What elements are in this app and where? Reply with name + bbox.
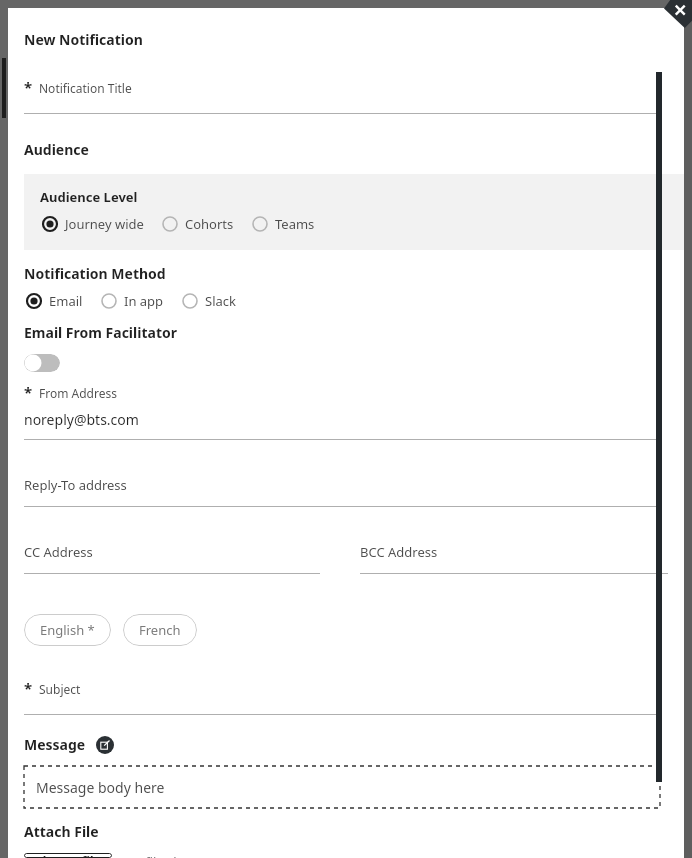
- staticText: *: [24, 382, 33, 402]
- staticText: Journey wide: [65, 215, 144, 233]
- staticText: From Address: [39, 385, 117, 401]
- button[interactable]: Edit message: [96, 736, 114, 754]
- button[interactable]: Teams: [250, 212, 317, 236]
- staticText: New Notification: [24, 30, 143, 49]
- staticText: *: [24, 678, 33, 698]
- button[interactable]: Email: [24, 289, 85, 313]
- staticText: Email From Facilitator: [24, 323, 177, 342]
- staticText: Attach File: [24, 822, 99, 841]
- staticText: Notification Title: [39, 80, 132, 96]
- staticText: Cohorts: [185, 215, 234, 233]
- staticText: Notification Method: [24, 264, 166, 283]
- staticText: Message body here: [36, 778, 165, 797]
- staticText: Teams: [275, 215, 315, 233]
- button[interactable]: Cohorts: [160, 212, 236, 236]
- button[interactable]: Choose file: [24, 853, 112, 858]
- staticText: In app: [124, 292, 164, 310]
- staticText: Slack: [205, 292, 236, 310]
- staticText: Reply-To address: [24, 476, 127, 494]
- staticText: No file choosen: [124, 853, 219, 858]
- staticText: French: [139, 621, 181, 639]
- button[interactable]: Slack: [180, 289, 238, 313]
- staticText: English *: [40, 621, 95, 639]
- button[interactable]: In app: [99, 289, 166, 313]
- staticText: Audience: [24, 140, 89, 159]
- button[interactable]: Journey wide: [40, 212, 146, 236]
- button[interactable]: English *: [24, 614, 111, 646]
- button[interactable]: Close: [664, 0, 692, 28]
- button[interactable]: Email from facilitator toggle: [24, 354, 60, 372]
- staticText: Choose file: [35, 853, 101, 858]
- staticText: Message: [24, 735, 86, 754]
- staticText: Email: [49, 292, 83, 310]
- button[interactable]: French: [123, 614, 197, 646]
- button[interactable]: Message body here: [24, 766, 660, 808]
- staticText: Subject: [39, 681, 81, 697]
- staticText: *: [24, 77, 33, 97]
- staticText: Audience Level: [40, 188, 138, 206]
- staticText: BCC Address: [360, 543, 438, 561]
- staticText: noreply@bts.com: [24, 410, 139, 429]
- staticText: CC Address: [24, 543, 93, 561]
